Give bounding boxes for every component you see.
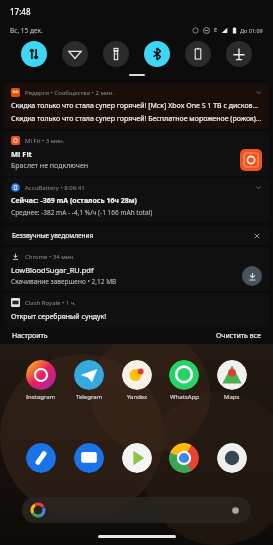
staticText: Instagram [26,393,56,401]
staticText: AccuBattery • 8:06:41 [25,184,85,192]
other: Clear [253,232,261,240]
button[interactable]: WhatsApp [169,360,199,390]
staticText: Скидка только что стала супер горячей! [… [11,101,262,111]
staticText: Mi Fit • 3 мин. [25,137,65,145]
button[interactable]: Maps [217,360,247,390]
button[interactable]: Clash Royale • 1 ч. [4,293,269,327]
button[interactable]: Настроить [10,329,50,343]
button[interactable]: Airplane mode [226,41,252,67]
staticText: Открыт серебряный сундук! [11,312,107,322]
staticText: Вс, 15 дек. [10,26,43,35]
staticText: Chrome • 34 мин. [25,253,75,261]
staticText: Сейчас: -369 mA (осталось 16ч 28м) [11,196,137,206]
button[interactable]: Wi-Fi [62,41,88,67]
staticText: Скачивание завершено • 2,12 MB [11,277,117,286]
button[interactable] [22,497,251,523]
staticText: Среднее: -382 mA - -4,1 %/ч (-1 166 mAh … [11,208,153,217]
staticText: Clash Royale • 1 ч. [25,299,76,307]
staticText: Настроить [12,331,48,341]
staticText: WhatsApp [170,393,199,401]
button[interactable]: App [74,443,104,473]
button[interactable]: Mi Fit • 3 мин. [4,131,269,176]
button[interactable]: App [217,443,247,473]
button[interactable]: App [169,443,199,473]
staticText: До 01:09 [240,27,263,34]
button[interactable]: App [122,443,152,473]
button[interactable]: Yandex [122,360,152,390]
button[interactable]: Chrome • 34 мин. [4,247,269,291]
button[interactable]: Instagram [26,360,56,390]
button[interactable]: App [26,443,56,473]
button[interactable]: AccuBattery • 8:06:41 [4,178,269,222]
staticText: Беззвучные уведомления [12,231,94,240]
staticText: Yandex [127,393,148,401]
button[interactable]: Flashlight [103,41,129,67]
staticText: Mi Fit [11,149,32,159]
button[interactable]: Mi Fit [240,149,262,171]
staticText: Браслет не подключен [11,161,89,171]
staticText: E [214,26,218,34]
staticText: Maps [224,393,240,401]
button[interactable]: Рядерги • Сообщества • 2 мин. [4,83,269,129]
staticText: 17:48 [10,6,31,17]
staticText: Рядерги • Сообщества • 2 мин. [25,89,115,97]
button[interactable]: Open download [242,266,262,286]
button[interactable]: Battery saver [185,41,211,67]
staticText: Очистить все [216,331,261,341]
button[interactable]: Telegram [74,360,104,390]
staticText: Telegram [76,393,103,401]
button[interactable]: Очистить все [214,329,263,343]
staticText: LowBloodSugar_RU.pdf [11,265,94,275]
button[interactable]: Mobile data [21,41,47,67]
button[interactable]: Беззвучные уведомления [4,226,269,245]
staticText: Скидка только что стала супер горячей! Б… [11,114,262,124]
button[interactable]: Bluetooth [144,41,170,67]
